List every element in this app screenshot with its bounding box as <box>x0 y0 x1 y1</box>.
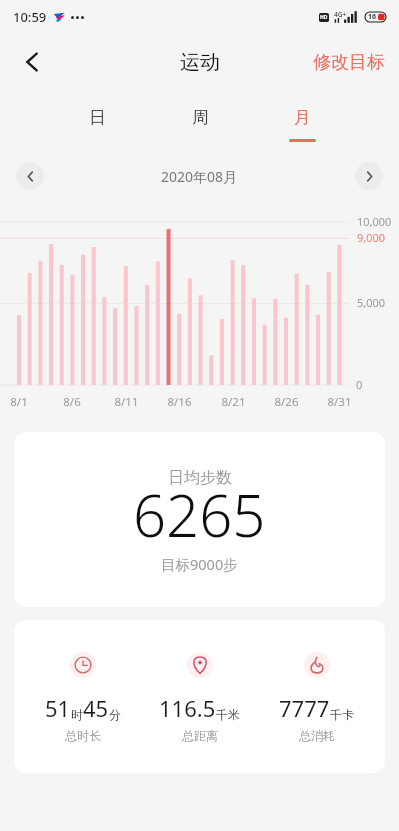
button[interactable]: 周 <box>149 100 251 146</box>
staticText: 8/26 <box>274 394 299 410</box>
staticText: 8/16 <box>167 394 192 410</box>
staticText: 目标9000步 <box>161 554 238 574</box>
staticText: 116.5 <box>159 693 216 723</box>
staticText: 4G+ <box>334 10 347 19</box>
staticText: 总距离 <box>182 728 218 743</box>
staticText: 9,000 <box>357 230 386 245</box>
staticText: 月 <box>294 107 311 128</box>
staticText: 5,000 <box>357 295 386 310</box>
staticText: 千卡 <box>330 707 354 722</box>
staticText: 总消耗 <box>299 728 335 743</box>
staticText: 周 <box>192 107 209 128</box>
button[interactable]: 51 <box>24 652 141 743</box>
staticText: 10,000 <box>357 214 392 229</box>
button[interactable]: Next month <box>355 162 383 190</box>
staticText: 总时长 <box>65 728 101 743</box>
staticText: 6265 <box>133 475 266 554</box>
staticText: 8/21 <box>221 394 246 410</box>
staticText: 修改目标 <box>313 51 385 74</box>
staticText: 0 <box>356 377 363 392</box>
button[interactable]: Previous month <box>16 162 44 190</box>
staticText: 10:59 <box>13 8 47 26</box>
staticText: 7777 <box>279 693 330 723</box>
staticText: 16 <box>368 12 377 22</box>
staticText: 日均步数 <box>168 468 232 488</box>
button[interactable]: 日 <box>46 100 149 146</box>
staticText: 8/1 <box>10 394 28 410</box>
staticText: 45 <box>83 693 109 723</box>
staticText: 8/6 <box>63 394 81 410</box>
staticText: 8/31 <box>327 394 352 410</box>
button[interactable]: Back <box>12 42 52 82</box>
staticText: 2020年08月 <box>161 167 238 186</box>
staticText: 运动 <box>180 50 220 75</box>
staticText: 千米 <box>216 707 240 722</box>
staticText: 8/11 <box>114 394 139 410</box>
staticText: 日 <box>89 107 106 128</box>
button[interactable]: 116.5 <box>141 652 258 743</box>
button[interactable]: 7777 <box>258 652 375 743</box>
staticText: 分 <box>109 707 121 722</box>
button[interactable]: 修改目标 <box>313 51 385 74</box>
staticText: HD <box>320 14 328 21</box>
staticText: 51 <box>45 693 71 723</box>
staticText: 时 <box>71 707 83 722</box>
button[interactable]: 日均步数 <box>14 432 385 607</box>
button[interactable]: 月 <box>251 100 353 146</box>
